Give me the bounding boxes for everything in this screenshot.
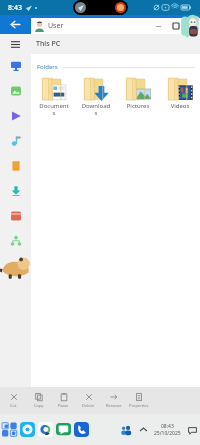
staticText: 25/10/2025	[154, 430, 181, 437]
staticText: Copy	[34, 403, 44, 408]
button[interactable]: Taskbar app 0	[2, 422, 17, 437]
button[interactable]: Rail item 0	[11, 61, 21, 71]
button[interactable]: Documents	[33, 77, 75, 117]
button[interactable]: Downloads	[75, 77, 117, 117]
button[interactable]: Pictures	[117, 77, 159, 110]
staticText: Folders	[37, 63, 58, 71]
button[interactable]: Rail item 5	[11, 186, 21, 196]
staticText: Cut	[10, 403, 17, 408]
staticText: 8:43	[8, 3, 22, 13]
button[interactable]: Cut	[1, 387, 26, 414]
button[interactable]: Rail item 1	[11, 86, 21, 96]
staticText: User	[48, 21, 64, 31]
button[interactable]: Rail item 6	[11, 211, 21, 221]
staticText: 08:43	[161, 423, 174, 430]
staticText: Videos	[165, 102, 195, 110]
button[interactable]: Rail item 3	[11, 136, 21, 146]
button[interactable]: Rail item 2	[11, 111, 21, 121]
button[interactable]: Show hidden icons	[138, 424, 149, 435]
button[interactable]: Delete	[76, 387, 101, 414]
staticText: This PC	[36, 39, 61, 49]
button[interactable]: Videos	[159, 77, 200, 110]
button[interactable]: Taskbar app 2	[38, 422, 53, 437]
button[interactable]: Rail item 7	[11, 236, 21, 246]
staticText: Paste	[58, 403, 69, 408]
staticText: Rename	[106, 403, 122, 408]
staticText: Downloads	[81, 102, 111, 117]
staticText: Pictures	[123, 102, 153, 110]
button[interactable]: Maximize	[170, 20, 182, 32]
button[interactable]: Paste	[51, 387, 76, 414]
button[interactable]: Taskbar app 3	[56, 422, 71, 437]
button[interactable]: Minimize	[152, 20, 164, 32]
button[interactable]: Properties	[126, 387, 151, 414]
button[interactable]: Rail item 4	[11, 161, 21, 171]
button[interactable]: Notifications	[186, 424, 198, 436]
button[interactable]: Back	[0, 15, 31, 34]
button[interactable]: People	[119, 423, 133, 437]
button[interactable]: Copy	[26, 387, 51, 414]
button[interactable]: Taskbar app 1	[20, 422, 35, 437]
staticText: Documents	[39, 102, 69, 117]
staticText: Properties	[129, 403, 149, 408]
button[interactable]: Rename	[101, 387, 126, 414]
button[interactable]: Menu	[8, 37, 22, 51]
button[interactable]: Taskbar app 4	[74, 422, 89, 437]
staticText: Delete	[82, 403, 95, 408]
